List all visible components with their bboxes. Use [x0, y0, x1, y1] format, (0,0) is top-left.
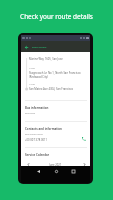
button[interactable]: Back: [34, 167, 43, 176]
button[interactable]: Next month: [81, 163, 87, 166]
staticText: 14:40: [29, 83, 35, 86]
staticText: Bus plate: [25, 112, 36, 115]
button[interactable]: Back: [23, 44, 30, 51]
staticText: San Mateo Ave 4304, San Francisco: [29, 87, 74, 91]
staticText: +00 007 378 0011: [25, 138, 48, 142]
button[interactable]: Call: [79, 134, 87, 142]
button[interactable]: Recents: [69, 167, 78, 176]
staticText: Stagecoach Ln No 1, North San Francisco: [29, 71, 81, 75]
staticText: Service Calendar: [25, 153, 49, 157]
button[interactable]: Previous month: [25, 163, 31, 166]
staticText: June 2021: [49, 163, 62, 166]
staticText: Contacts and information: [25, 127, 62, 131]
staticText: (Redwood City): [29, 75, 48, 79]
staticText: Bus information: [25, 106, 49, 110]
staticText: Marine Way 1605, San Jose: [29, 57, 63, 61]
staticText: Check your route details: [20, 12, 93, 21]
staticText: Route details: [32, 46, 47, 49]
staticText: Bus driver name: [25, 133, 43, 136]
button[interactable]: Home: [52, 167, 61, 176]
staticText: 14:20: [29, 67, 35, 70]
